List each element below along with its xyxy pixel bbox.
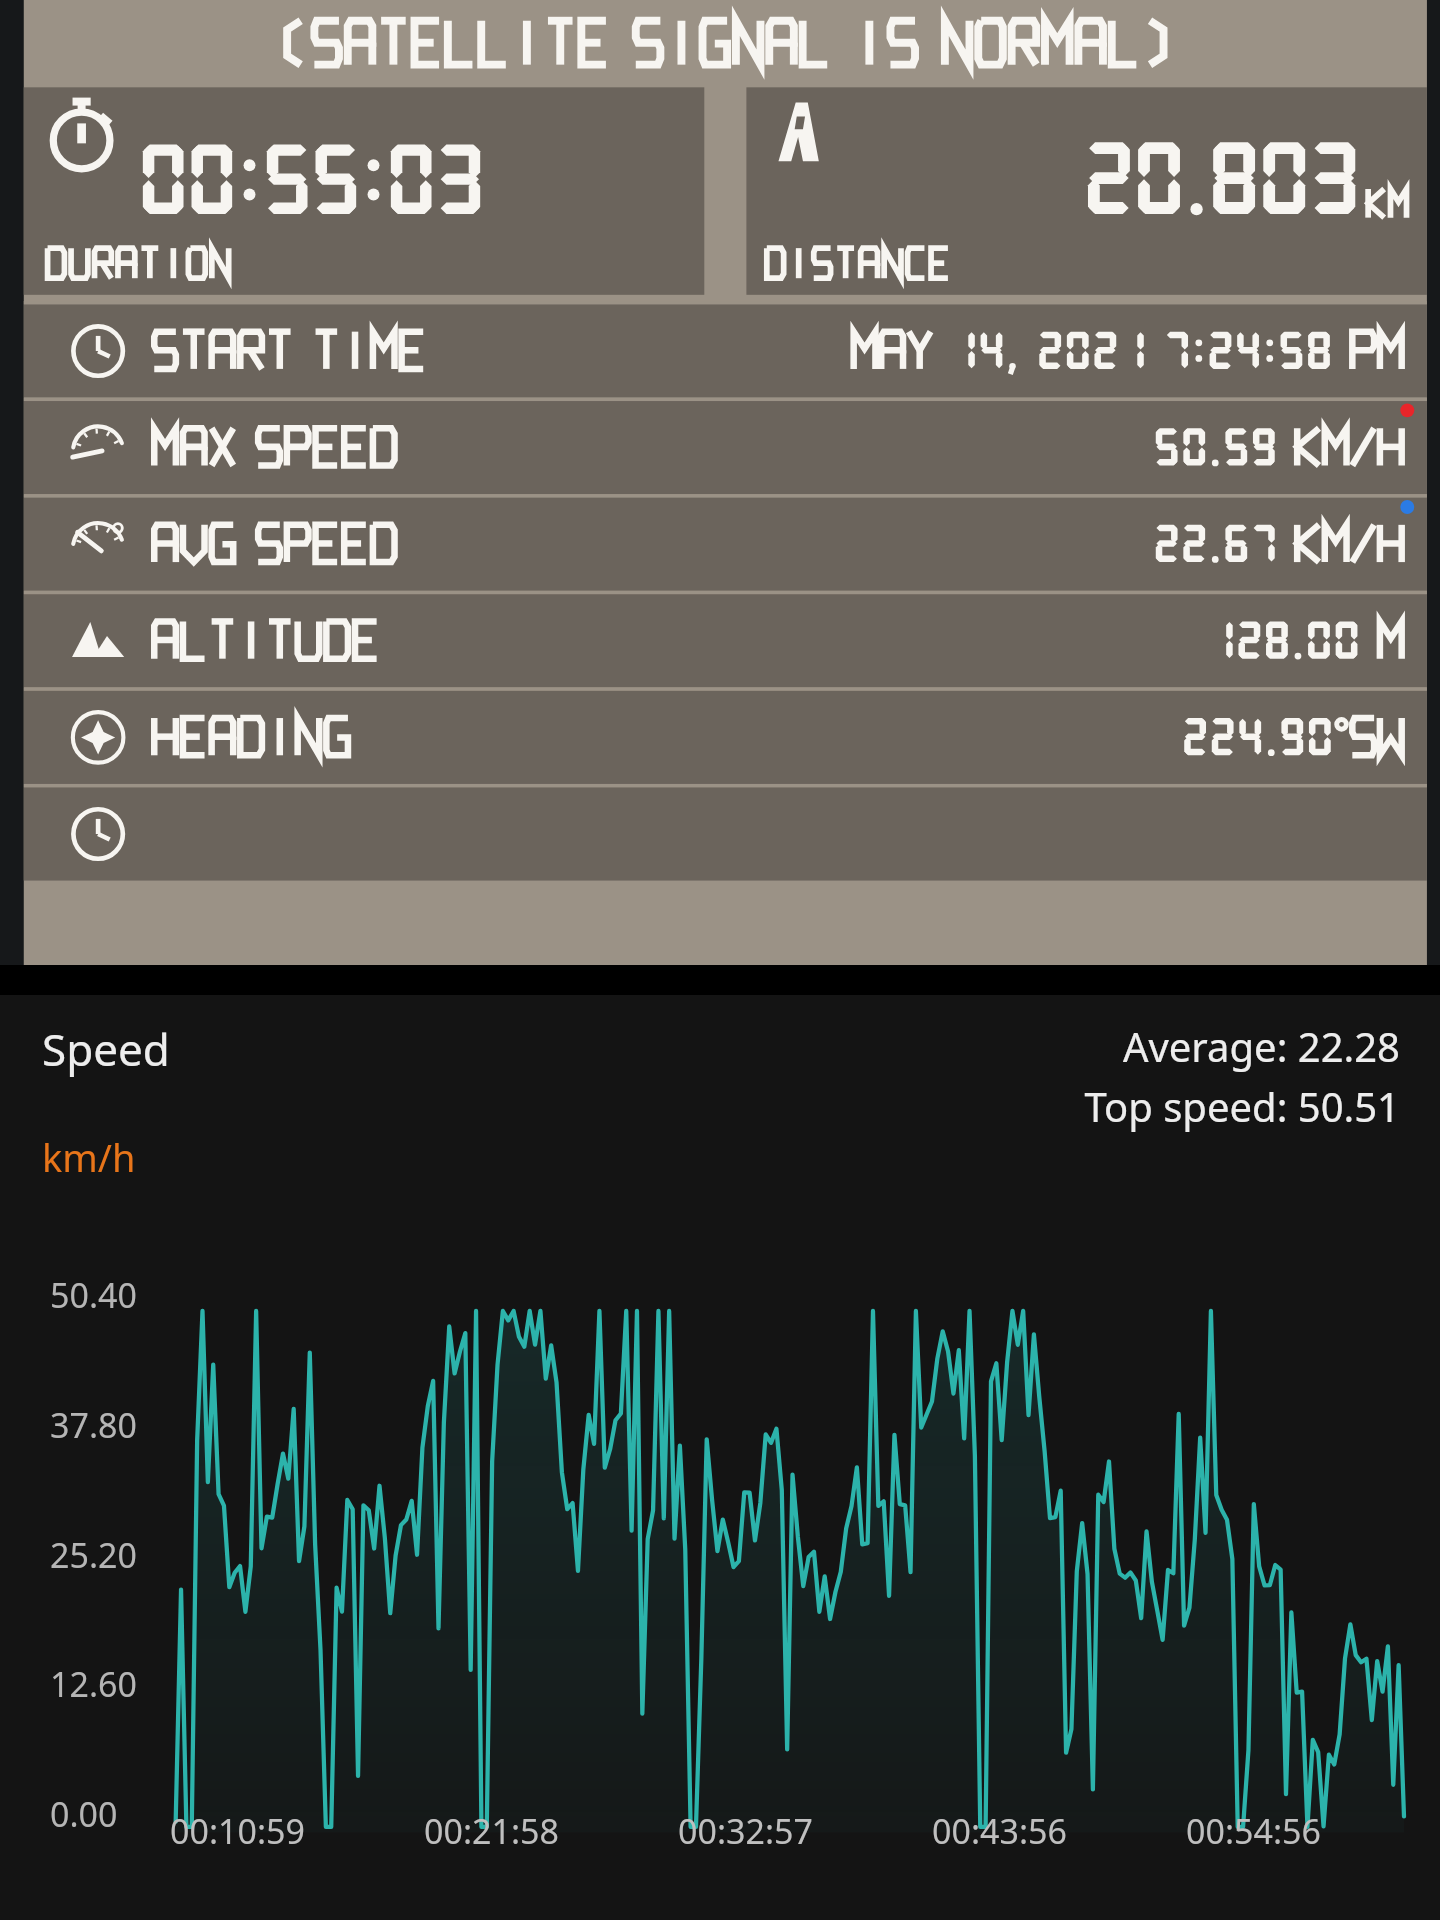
staticText: Top speed: 50.51 — [1084, 1079, 1400, 1133]
staticText: 0.00 — [50, 1791, 118, 1837]
staticText: 00:54:56 — [1186, 1808, 1321, 1854]
staticText: Average: 22.28 — [1122, 1019, 1400, 1073]
button[interactable]: Speed — [42, 1019, 170, 1079]
staticText: 00:21:58 — [424, 1808, 559, 1854]
staticText: 00:10:59 — [170, 1808, 305, 1854]
staticText: Speed — [42, 1019, 170, 1079]
staticText: km/h — [42, 1131, 136, 1183]
staticText: 00:32:57 — [678, 1808, 813, 1854]
staticText: 00:43:56 — [932, 1808, 1067, 1854]
staticText: 50.40 — [50, 1272, 137, 1318]
staticText: 25.20 — [50, 1532, 137, 1578]
staticText: 37.80 — [50, 1402, 137, 1448]
staticText: 12.60 — [50, 1661, 137, 1707]
